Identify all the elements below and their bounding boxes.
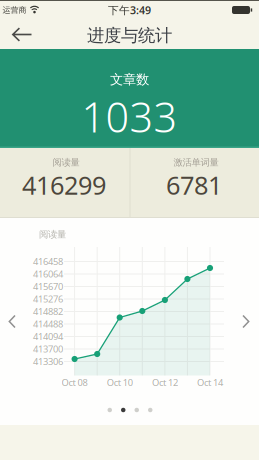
staticText: 进度与统计 — [87, 25, 172, 46]
staticText: 415670 — [33, 280, 63, 293]
button[interactable] — [2, 309, 22, 334]
staticText: 416299 — [22, 168, 106, 202]
staticText: 413306 — [33, 355, 63, 368]
staticText: Oct 10 — [107, 376, 133, 389]
staticText: 激活单词量 — [173, 157, 218, 168]
staticText: 413700 — [33, 343, 63, 355]
staticText: 6781 — [166, 168, 222, 202]
button[interactable] — [0, 20, 34, 48]
staticText: 414094 — [33, 330, 63, 343]
staticText: 414488 — [33, 318, 63, 330]
button[interactable] — [235, 309, 255, 334]
staticText: 1033 — [81, 89, 177, 144]
staticText: 阅读量 — [39, 229, 66, 240]
staticText: 415276 — [33, 293, 63, 305]
button[interactable] — [99, 402, 160, 418]
staticText: 阅读量 — [52, 157, 79, 168]
staticText: 文章数 — [110, 71, 149, 88]
staticText: 416458 — [33, 255, 63, 268]
staticText: 414882 — [33, 305, 63, 318]
staticText: Oct 08 — [62, 376, 88, 389]
staticText: Oct 14 — [197, 376, 223, 389]
staticText: 下午3:49 — [108, 3, 151, 17]
staticText: Oct 12 — [152, 376, 178, 389]
staticText: 运营商 — [2, 5, 26, 15]
staticText: 416064 — [33, 268, 63, 280]
